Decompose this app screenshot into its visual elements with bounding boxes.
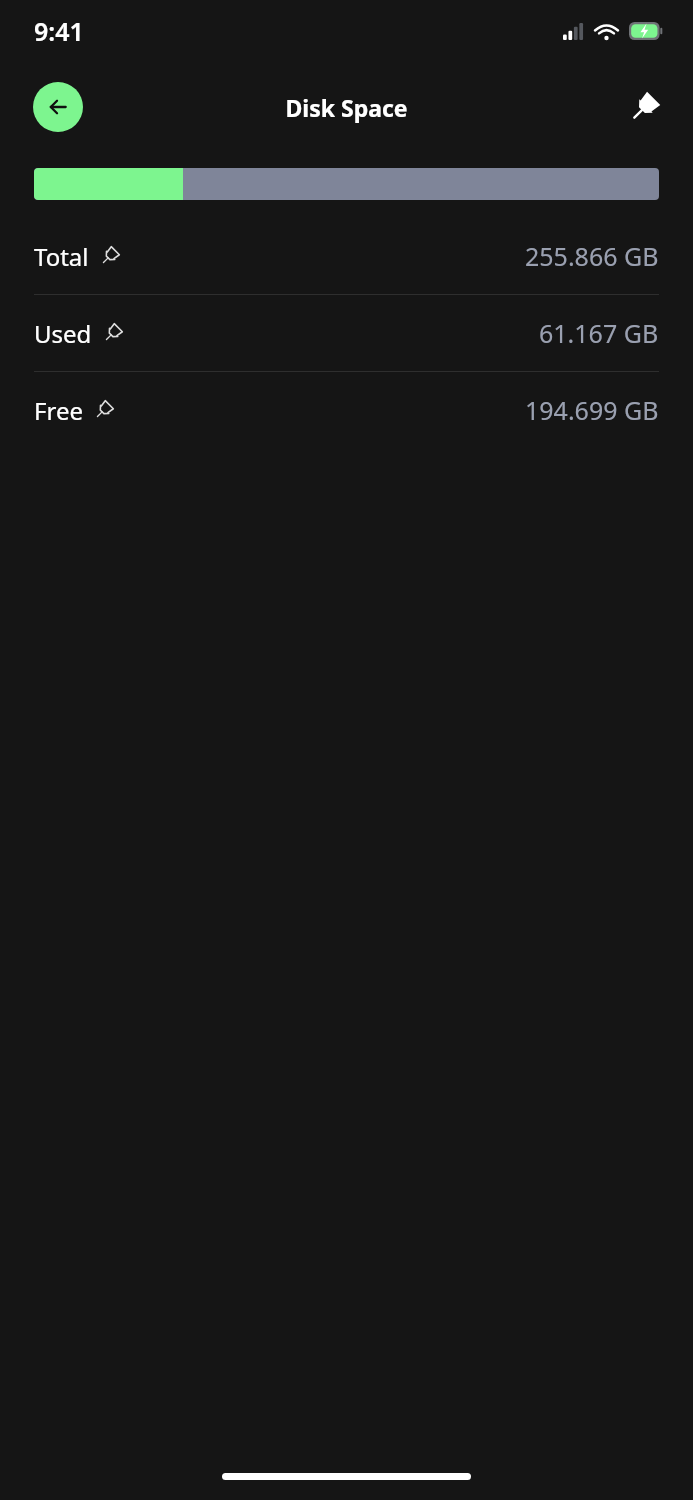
button[interactable]: Back: [33, 82, 83, 132]
staticText: 61.167 GB: [539, 316, 659, 350]
button[interactable]: Used: [0, 295, 693, 372]
button[interactable]: Free: [0, 372, 693, 448]
staticText: 194.699 GB: [525, 393, 659, 427]
button[interactable]: Pin: [619, 81, 671, 133]
staticText: Total: [34, 240, 89, 273]
button[interactable]: Total: [0, 218, 693, 295]
staticText: Disk Space: [285, 92, 408, 123]
staticText: Free: [34, 394, 83, 427]
staticText: 255.866 GB: [525, 239, 659, 273]
staticText: 9:41: [34, 14, 84, 48]
staticText: Used: [34, 317, 92, 350]
